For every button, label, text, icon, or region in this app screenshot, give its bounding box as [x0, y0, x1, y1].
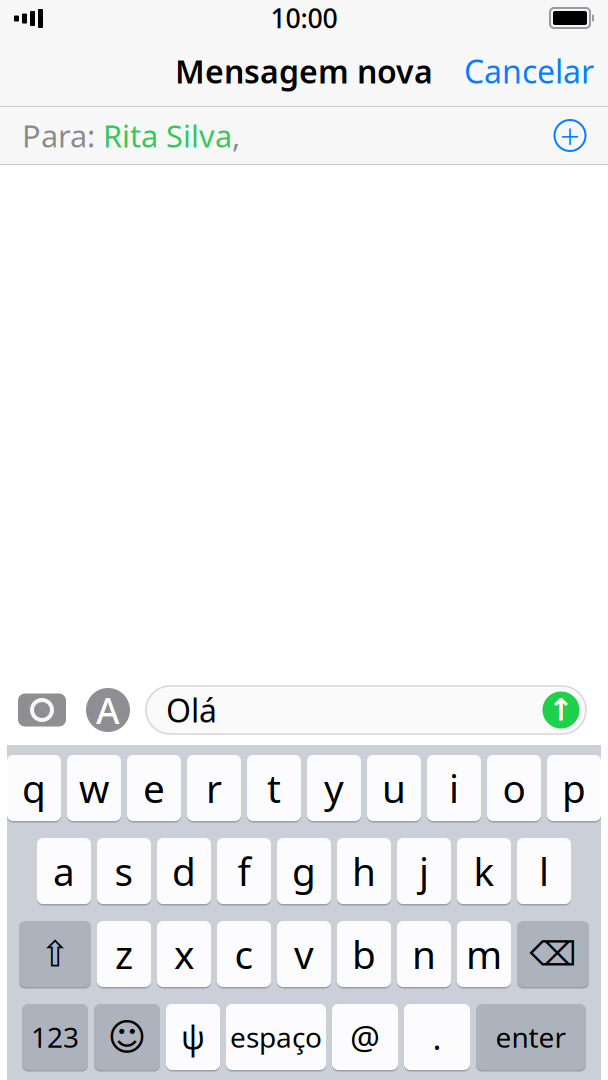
- staticText: 123: [31, 1018, 79, 1056]
- staticText: e: [143, 762, 165, 814]
- button[interactable]: Delete: [517, 919, 589, 988]
- staticText: ⌫: [529, 935, 576, 973]
- button[interactable]: r: [187, 753, 241, 822]
- button[interactable]: q: [7, 753, 61, 822]
- button[interactable]: i: [427, 753, 481, 822]
- staticText: ⇧: [40, 934, 70, 974]
- button[interactable]: App Store: [82, 686, 134, 734]
- staticText: u: [382, 762, 406, 814]
- staticText: espaço: [230, 1018, 322, 1056]
- button[interactable]: b: [337, 919, 391, 988]
- button[interactable]: l: [517, 836, 571, 905]
- button[interactable]: a: [37, 836, 91, 905]
- staticText: ☺: [107, 1016, 146, 1058]
- staticText: v: [294, 928, 314, 980]
- button[interactable]: h: [337, 836, 391, 905]
- button[interactable]: n: [397, 919, 451, 988]
- staticText: Mensagem nova: [175, 50, 433, 92]
- button[interactable]: .: [404, 1002, 470, 1071]
- staticText: enter: [495, 1018, 566, 1056]
- button[interactable]: d: [157, 836, 211, 905]
- button[interactable]: c: [217, 919, 271, 988]
- button[interactable]: g: [277, 836, 331, 905]
- staticText: c: [234, 928, 253, 980]
- button[interactable]: 123: [22, 1002, 88, 1071]
- button[interactable]: k: [457, 836, 511, 905]
- staticText: m: [466, 928, 502, 980]
- button[interactable]: Dictation: [166, 1002, 220, 1071]
- staticText: k: [473, 845, 494, 897]
- staticText: h: [352, 845, 376, 897]
- staticText: y: [324, 762, 344, 814]
- button[interactable]: e: [127, 753, 181, 822]
- button[interactable]: Rita Silva: [103, 115, 232, 156]
- staticText: Rita Silva: [103, 115, 232, 156]
- staticText: .: [432, 1015, 441, 1059]
- button[interactable]: enter: [476, 1002, 586, 1071]
- button[interactable]: Cancelar: [450, 38, 608, 104]
- staticText: a: [53, 845, 75, 897]
- staticText: i: [449, 762, 459, 814]
- button[interactable]: espaço: [226, 1002, 326, 1071]
- button[interactable]: m: [457, 919, 511, 988]
- button[interactable]: Camera: [14, 686, 70, 734]
- button[interactable]: o: [487, 753, 541, 822]
- button[interactable]: u: [367, 753, 421, 822]
- button[interactable]: p: [547, 753, 601, 822]
- staticText: l: [539, 845, 549, 897]
- button[interactable]: x: [157, 919, 211, 988]
- staticText: o: [502, 762, 525, 814]
- staticText: p: [562, 762, 586, 814]
- staticText: ,: [232, 115, 240, 156]
- staticText: 10:00: [270, 0, 337, 36]
- button[interactable]: Emoji: [94, 1002, 160, 1071]
- button[interactable]: j: [397, 836, 451, 905]
- button[interactable]: Shift: [19, 919, 91, 988]
- button[interactable]: @: [332, 1002, 398, 1071]
- staticText: t: [267, 762, 281, 814]
- staticText: d: [172, 845, 196, 897]
- button[interactable]: Send: [540, 689, 582, 731]
- staticText: n: [412, 928, 436, 980]
- staticText: ↑: [548, 693, 574, 727]
- staticText: x: [174, 928, 194, 980]
- staticText: g: [292, 845, 316, 897]
- staticText: ψ: [181, 1016, 205, 1058]
- staticText: Olá: [166, 689, 217, 731]
- staticText: q: [22, 762, 46, 814]
- staticText: r: [206, 762, 222, 814]
- button[interactable]: t: [247, 753, 301, 822]
- button[interactable]: v: [277, 919, 331, 988]
- staticText: f: [237, 845, 250, 897]
- button[interactable]: y: [307, 753, 361, 822]
- staticText: +: [560, 112, 580, 158]
- button[interactable]: f: [217, 836, 271, 905]
- button[interactable]: Add contact: [548, 113, 592, 157]
- staticText: j: [419, 845, 429, 897]
- staticText: Cancelar: [464, 50, 594, 92]
- staticText: s: [114, 845, 133, 897]
- staticText: Para:: [22, 115, 103, 156]
- staticText: z: [115, 928, 133, 980]
- button[interactable]: z: [97, 919, 151, 988]
- staticText: b: [352, 928, 376, 980]
- staticText: A: [96, 686, 120, 734]
- staticText: @: [350, 1015, 380, 1059]
- staticText: w: [79, 762, 109, 814]
- button[interactable]: s: [97, 836, 151, 905]
- button[interactable]: w: [67, 753, 121, 822]
